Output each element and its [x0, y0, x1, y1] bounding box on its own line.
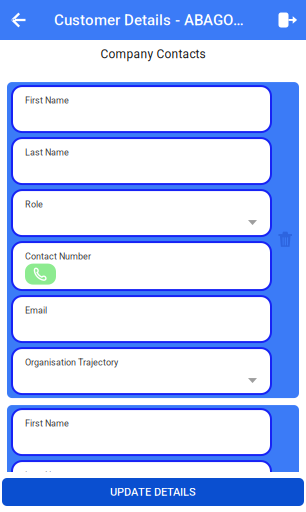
staticText: Company Contacts: [100, 47, 205, 61]
staticText: Customer Details - ABAGO…: [54, 11, 244, 29]
staticText: Organisation Trajectory: [25, 357, 118, 368]
button[interactable]: Delete contact: [271, 231, 299, 279]
staticText: Contact Number: [25, 251, 91, 262]
staticText: First Name: [25, 95, 69, 106]
staticText: Last Name: [25, 470, 69, 481]
staticText: Last Name: [25, 147, 69, 158]
staticText: Email: [25, 305, 47, 316]
button[interactable]: UPDATE DETAILS: [2, 478, 304, 506]
staticText: Role: [25, 199, 43, 210]
button[interactable]: Back: [0, 0, 36, 40]
staticText: UPDATE DETAILS: [110, 486, 196, 498]
staticText: First Name: [25, 418, 69, 429]
button[interactable]: Call: [25, 264, 56, 285]
button[interactable]: Log out: [270, 0, 306, 40]
